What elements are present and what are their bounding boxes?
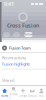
staticText: Follow [24,33,33,36]
button[interactable]: Follow [24,32,33,37]
staticText: Browse [9,92,18,100]
staticText: You [39,94,44,98]
staticText: Inbox [28,94,36,98]
button[interactable]: Inbox [28,86,37,99]
staticText: Fusion highlights [2,61,30,67]
button[interactable]: Category [13,32,20,37]
button[interactable]: Fusion Team [0,44,46,52]
staticText: Shared boards [2,84,27,89]
button[interactable]: Browse [9,86,18,99]
button[interactable]: Recent activity [0,53,46,69]
button[interactable]: Home [0,86,9,99]
staticText: 9:41 [4,0,14,8]
staticText: Shared [2,78,14,83]
button[interactable]: You [37,86,46,99]
staticText: Home [1,94,9,98]
staticText: Cross Fusion [7,22,39,29]
staticText: Recent activity [2,55,26,60]
button[interactable]: Category [3,32,10,37]
staticText: Fusion Team [9,45,31,51]
staticText: Create [18,94,27,98]
button[interactable]: Profile photo [19,13,27,21]
button[interactable]: Shared [0,76,46,91]
button[interactable]: Create [18,86,28,99]
